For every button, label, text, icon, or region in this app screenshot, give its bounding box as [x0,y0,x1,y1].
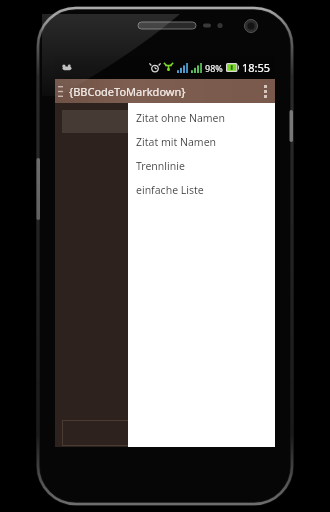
staticText: 18:55 [242,60,271,75]
button[interactable]: Navigate up [55,79,66,103]
staticText: Zitat mit Namen [136,135,217,149]
button[interactable]: Zitat ohne Namen [128,106,275,130]
button[interactable] [62,420,268,446]
staticText: 98% [205,62,223,74]
button[interactable] [62,110,268,133]
staticText: {BBCodeToMarkdown} [69,84,186,99]
staticText: Zitat ohne Namen [136,111,225,125]
staticText: Trennlinie [136,159,185,173]
staticText: einfache Liste [136,183,204,197]
button[interactable]: einfache Liste [128,178,275,202]
button[interactable]: Trennlinie [128,154,275,178]
button[interactable]: More options [255,79,275,103]
button[interactable]: Zitat mit Namen [128,130,275,154]
